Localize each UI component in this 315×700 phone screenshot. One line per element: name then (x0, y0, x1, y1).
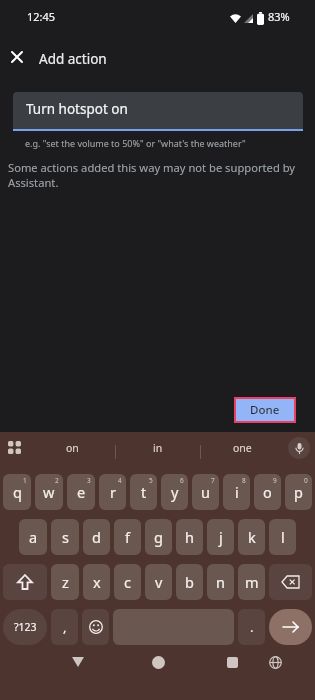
staticText: Done (250, 402, 280, 418)
button[interactable]: u (192, 474, 219, 510)
button[interactable]: on (30, 434, 115, 462)
button[interactable] (218, 648, 246, 676)
staticText: a (29, 527, 38, 547)
staticText: ?123 (14, 620, 37, 634)
staticText: 83% (268, 9, 290, 24)
button[interactable]: c (114, 564, 141, 600)
button[interactable]: l (269, 519, 296, 555)
staticText: , (63, 618, 67, 636)
staticText: q (13, 482, 22, 502)
button[interactable]: e (67, 474, 95, 510)
button[interactable]: i (223, 474, 250, 510)
staticText: e (77, 482, 86, 502)
staticText: k (248, 527, 256, 547)
button[interactable]: x (83, 564, 110, 600)
button[interactable]: q (3, 474, 31, 510)
button[interactable]: y (161, 474, 188, 510)
button[interactable] (261, 648, 289, 676)
staticText: b (185, 572, 194, 592)
button[interactable] (288, 437, 310, 459)
button[interactable]: p (285, 474, 312, 510)
staticText: c (124, 572, 131, 592)
staticText: f (125, 527, 130, 547)
staticText: i (235, 482, 239, 502)
staticText: r (110, 482, 116, 502)
staticText: n (216, 572, 225, 592)
staticText: d (92, 527, 101, 547)
button[interactable] (2, 435, 28, 461)
staticText: y (171, 482, 179, 502)
staticText: 5 (149, 476, 153, 485)
staticText: one (233, 441, 252, 455)
button[interactable] (269, 564, 312, 600)
staticText: 0 (304, 476, 308, 485)
staticText: Some actions added this way may not be s… (8, 160, 308, 190)
button[interactable]: r (99, 474, 126, 510)
button[interactable]: o (254, 474, 281, 510)
button[interactable]: one (200, 434, 285, 462)
button[interactable]: g (145, 519, 172, 555)
staticText: 7 (211, 476, 215, 485)
staticText: l (281, 527, 285, 547)
button[interactable]: z (51, 564, 79, 600)
staticText: g (154, 527, 163, 547)
button[interactable]: k (238, 519, 265, 555)
staticText: Add action (39, 50, 107, 68)
staticText: in (153, 441, 163, 455)
staticText: 8 (242, 476, 246, 485)
staticText: 9 (273, 476, 277, 485)
button[interactable]: f (114, 519, 141, 555)
button[interactable]: Turn hotspot on (13, 92, 303, 129)
button[interactable] (144, 648, 172, 676)
staticText: on (66, 441, 79, 455)
staticText: p (294, 482, 303, 502)
button[interactable]: t (130, 474, 157, 510)
button[interactable]: h (176, 519, 203, 555)
button[interactable]: . (238, 609, 265, 645)
staticText: e.g. "set the volume to 50%" or "what's … (25, 137, 246, 149)
staticText: v (155, 572, 163, 592)
staticText: s (62, 527, 69, 547)
button[interactable]: , (51, 609, 78, 645)
button[interactable] (64, 648, 92, 676)
staticText: 12:45 (27, 9, 56, 24)
staticText: t (141, 482, 147, 502)
button[interactable]: Done (236, 399, 294, 421)
button[interactable] (269, 609, 312, 645)
staticText: h (185, 527, 194, 547)
button[interactable]: in (115, 434, 200, 462)
button[interactable]: v (145, 564, 172, 600)
button[interactable]: w (35, 474, 63, 510)
staticText: 2 (55, 476, 59, 485)
staticText: u (201, 482, 210, 502)
staticText: j (219, 527, 223, 547)
staticText: . (250, 618, 254, 636)
staticText: m (245, 572, 259, 592)
staticText: x (93, 572, 101, 592)
staticText: w (43, 482, 55, 502)
button[interactable]: m (238, 564, 265, 600)
button[interactable]: j (207, 519, 234, 555)
staticText: 6 (180, 476, 184, 485)
button[interactable]: ?123 (3, 609, 47, 645)
staticText: Turn hotspot on (26, 100, 128, 118)
button[interactable]: n (207, 564, 234, 600)
button[interactable] (4, 44, 30, 70)
button[interactable]: b (176, 564, 203, 600)
staticText: 3 (87, 476, 91, 485)
staticText: z (62, 572, 69, 592)
staticText: 1 (23, 476, 27, 485)
staticText: 4 (118, 476, 122, 485)
staticText: o (263, 482, 272, 502)
button[interactable] (82, 609, 109, 645)
button[interactable] (3, 564, 47, 600)
button[interactable]: a (19, 519, 47, 555)
button[interactable]: d (83, 519, 110, 555)
button[interactable]: s (51, 519, 79, 555)
